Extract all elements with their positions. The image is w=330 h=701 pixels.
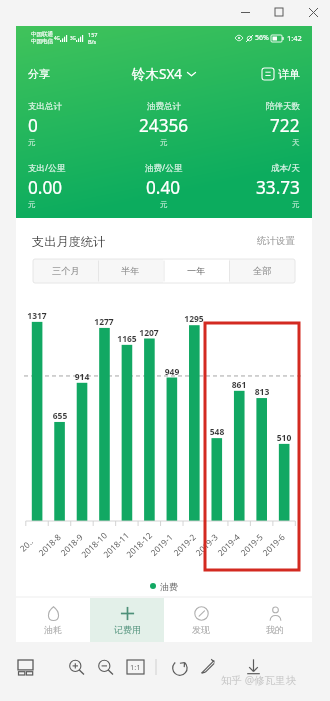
staticText: 4G xyxy=(54,35,60,41)
staticText: 2018-12 xyxy=(124,529,154,559)
staticText: 油费 xyxy=(160,581,178,592)
staticText: 元 xyxy=(292,200,300,209)
staticText: 天 xyxy=(292,138,300,147)
staticText: 我的 xyxy=(266,624,284,635)
staticText: 中国电信 xyxy=(31,38,53,45)
button[interactable]: 一年 xyxy=(163,259,229,283)
staticText: 陪伴天数 xyxy=(266,101,300,112)
staticText: 949 xyxy=(161,366,183,378)
staticText: 1277 xyxy=(93,316,115,328)
button[interactable]: Preview xyxy=(14,656,36,678)
staticText: 油耗 xyxy=(44,624,62,635)
staticText: B/s xyxy=(88,38,97,45)
button[interactable]: 我的 xyxy=(238,598,312,642)
staticText: 2019-3 xyxy=(193,531,220,558)
staticText: 157 xyxy=(88,31,98,38)
staticText: 722 xyxy=(270,114,300,137)
button[interactable]: 三个月 xyxy=(33,259,98,283)
staticText: 元 xyxy=(28,138,36,147)
staticText: 548 xyxy=(206,426,228,438)
staticText: 1207 xyxy=(138,327,160,339)
staticText: 0 xyxy=(28,114,38,137)
staticText: 0.40 xyxy=(146,176,181,199)
staticText: 1:42 xyxy=(287,33,302,43)
button[interactable]: Actual size xyxy=(127,660,144,674)
button[interactable]: Zoom in xyxy=(66,656,86,676)
staticText: 元 xyxy=(160,200,168,209)
staticText: 支出月度统计 xyxy=(32,234,106,249)
staticText: 支出/公里 xyxy=(28,162,66,174)
staticText: 510 xyxy=(273,432,295,444)
staticText: 油费/公里 xyxy=(145,162,183,174)
button[interactable]: Close xyxy=(296,0,330,24)
staticText: 0.00 xyxy=(28,176,63,199)
button[interactable]: Edit xyxy=(196,655,218,677)
staticText: 2019-1 xyxy=(148,531,175,558)
staticText: 知乎 @修瓦里块 xyxy=(221,673,297,687)
button[interactable]: 铃木SX4 xyxy=(128,61,200,87)
staticText: 铃木SX4 xyxy=(132,65,183,83)
staticText: 记费用 xyxy=(114,624,141,635)
button[interactable]: 分享 xyxy=(24,63,54,85)
staticText: 元 xyxy=(28,200,36,209)
staticText: 2018-8 xyxy=(36,531,63,558)
staticText: 1165 xyxy=(116,333,138,345)
staticText: 发现 xyxy=(192,624,210,635)
button[interactable]: 油耗 xyxy=(16,598,90,642)
button[interactable]: Redo xyxy=(170,656,190,676)
staticText: 统计设置 xyxy=(257,235,295,247)
staticText: 中国联通 xyxy=(31,31,53,38)
staticText: 2018-9 xyxy=(58,531,85,558)
staticText: 1317 xyxy=(26,310,48,322)
staticText: 655 xyxy=(49,410,71,422)
staticText: 24356 xyxy=(139,114,189,137)
button[interactable]: Minimize xyxy=(228,0,262,24)
staticText: 3G xyxy=(70,35,76,41)
button[interactable]: Maximize xyxy=(262,0,296,24)
staticText: 油费总计 xyxy=(147,101,181,112)
staticText: 56% xyxy=(255,33,269,43)
staticText: 2018-10 xyxy=(79,529,109,559)
staticText: 2019-2 xyxy=(171,531,198,558)
staticText: 33.73 xyxy=(256,176,300,199)
button[interactable]: Zoom out xyxy=(95,656,115,676)
staticText: 2019-6 xyxy=(260,531,287,558)
button[interactable]: 详单 xyxy=(258,63,304,85)
staticText: 813 xyxy=(251,386,273,398)
button[interactable]: 半年 xyxy=(98,259,163,283)
staticText: 一年 xyxy=(187,265,206,277)
staticText: 半年 xyxy=(121,265,140,277)
staticText: 1295 xyxy=(183,313,205,325)
staticText: 详单 xyxy=(278,67,300,81)
button[interactable]: 统计设置 xyxy=(254,232,298,250)
staticText: 三个月 xyxy=(52,265,80,277)
staticText: 1:1 xyxy=(130,662,141,672)
staticText: 914 xyxy=(71,371,93,383)
staticText: 2019-5 xyxy=(238,531,265,558)
button[interactable]: Download xyxy=(244,655,264,675)
staticText: 20.. xyxy=(17,535,36,554)
staticText: 861 xyxy=(228,379,250,391)
staticText: 全部 xyxy=(253,265,272,277)
staticText: 元 xyxy=(160,138,168,147)
staticText: 2019-4 xyxy=(215,531,242,558)
button[interactable]: 发现 xyxy=(164,598,238,642)
button[interactable]: 记费用 xyxy=(90,598,164,642)
staticText: 支出总计 xyxy=(28,101,62,112)
staticText: 2018-11 xyxy=(101,529,131,559)
staticText: 成本/天 xyxy=(271,162,300,174)
staticText: 分享 xyxy=(28,67,50,81)
button[interactable]: 全部 xyxy=(229,259,295,283)
